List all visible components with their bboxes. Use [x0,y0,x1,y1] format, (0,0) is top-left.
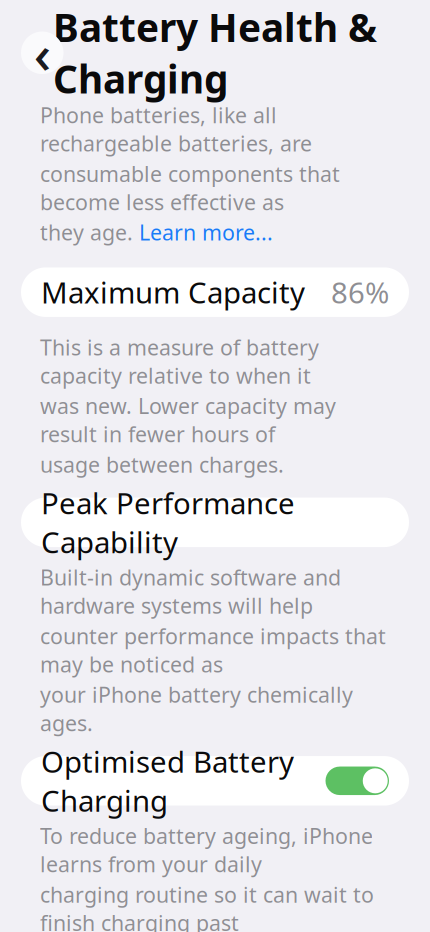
staticText: your iPhone battery chemically ages. [40,680,353,737]
staticText: Optimised Battery Charging [41,742,294,820]
button[interactable]: Optimised Battery Charging [21,756,409,806]
button[interactable]: Maximum Capacity [21,267,409,317]
staticText: Learn more... [139,218,273,246]
staticText: Phone batteries, like all rechargeable b… [40,101,312,157]
staticText: 86% [331,273,389,312]
staticText: Maximum Capacity [41,273,305,312]
staticText: was new. Lower capacity may result in fe… [40,392,336,448]
staticText: they age. [40,218,139,246]
staticText: charging routine so it can wait to finis… [40,880,374,932]
staticText: counter performance impacts that may be … [40,622,386,678]
staticText: consumable components that become less e… [40,159,340,216]
staticText: usage between charges. [40,450,284,479]
staticText: This is a measure of battery capacity re… [40,333,319,390]
staticText: To reduce battery ageing, iPhone learns … [40,822,373,878]
button[interactable]: Back [21,31,63,74]
button[interactable]: Learn more... [139,218,273,246]
staticText: Battery Health & Charging [53,1,377,104]
staticText: Peak Performance Capability [41,483,295,561]
staticText: Built-in dynamic software and hardware s… [40,563,341,620]
button[interactable]: Peak Performance Capability [21,498,409,547]
staticText: ‹ [34,17,51,88]
